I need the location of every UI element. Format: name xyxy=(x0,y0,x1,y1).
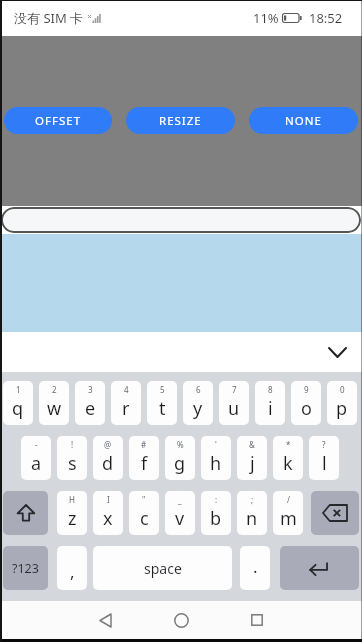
staticText: e xyxy=(85,396,96,421)
button[interactable]: NONE xyxy=(249,107,358,134)
button[interactable]: * xyxy=(273,436,303,480)
staticText: 8 xyxy=(268,384,273,395)
staticText: ' xyxy=(215,439,217,450)
staticText: * xyxy=(286,439,291,450)
button[interactable]: OFFSET xyxy=(4,107,112,134)
staticText: , xyxy=(70,560,75,583)
button[interactable]: . xyxy=(240,546,270,590)
staticText: 6 xyxy=(196,384,201,395)
staticText: k xyxy=(283,451,293,476)
staticText: 没有 SIM 卡 xyxy=(14,9,84,27)
button[interactable]: ! xyxy=(57,436,87,480)
staticText: g xyxy=(174,451,186,476)
button[interactable] xyxy=(320,337,354,367)
button[interactable] xyxy=(311,491,359,535)
button[interactable]: & xyxy=(237,436,267,480)
staticText: . xyxy=(253,555,258,578)
button[interactable] xyxy=(3,491,48,535)
staticText: 4 xyxy=(124,384,129,395)
staticText: c xyxy=(140,506,149,531)
staticText: 18:52 xyxy=(309,9,343,27)
staticText: space xyxy=(144,559,182,578)
staticText: / xyxy=(287,494,290,505)
staticText: RESIZE xyxy=(159,113,202,129)
staticText: o xyxy=(301,396,312,421)
staticText: x xyxy=(103,506,113,531)
staticText: % xyxy=(177,439,184,450)
staticText: 0 xyxy=(340,384,345,395)
staticText: l xyxy=(322,451,327,476)
button[interactable]: : xyxy=(201,491,231,535)
staticText: f xyxy=(141,451,148,476)
staticText: I xyxy=(107,494,110,505)
button[interactable]: ' xyxy=(201,436,231,480)
staticText: ! xyxy=(71,439,74,450)
staticText: 11% xyxy=(253,9,279,27)
staticText: y xyxy=(193,396,203,421)
staticText: n xyxy=(246,506,258,531)
staticText: : xyxy=(215,494,218,505)
button[interactable]: H xyxy=(57,491,87,535)
staticText: & xyxy=(249,439,255,450)
staticText: @ xyxy=(104,439,112,450)
button[interactable]: 5 xyxy=(147,381,177,425)
button[interactable] xyxy=(280,546,359,590)
staticText: ? xyxy=(322,439,326,450)
staticText: m xyxy=(280,506,297,531)
button[interactable]: 2 xyxy=(39,381,69,425)
staticText: 9 xyxy=(304,384,309,395)
staticText: p xyxy=(336,396,348,421)
button[interactable]: ; xyxy=(237,491,267,535)
button[interactable]: % xyxy=(165,436,195,480)
staticText: 7 xyxy=(232,384,237,395)
staticText: 2 xyxy=(52,384,57,395)
staticText: j xyxy=(250,451,255,476)
staticText: H xyxy=(69,494,75,505)
staticText: # xyxy=(141,439,147,450)
staticText: d xyxy=(102,451,114,476)
button[interactable]: ? xyxy=(309,436,339,480)
staticText: 5 xyxy=(160,384,165,395)
button[interactable] xyxy=(227,601,287,639)
button[interactable] xyxy=(1,207,361,233)
button[interactable]: 8 xyxy=(255,381,285,425)
button[interactable]: # xyxy=(129,436,159,480)
button[interactable]: 7 xyxy=(219,381,249,425)
button[interactable]: @ xyxy=(93,436,123,480)
button[interactable]: RESIZE xyxy=(126,107,235,134)
staticText: t xyxy=(159,396,166,421)
button[interactable]: 9 xyxy=(291,381,321,425)
staticText: NONE xyxy=(285,113,322,129)
button[interactable]: 4 xyxy=(111,381,141,425)
button[interactable] xyxy=(75,601,135,639)
staticText: 1 xyxy=(16,384,21,395)
button[interactable]: space xyxy=(93,546,232,590)
button[interactable]: 1 xyxy=(3,381,33,425)
staticText: OFFSET xyxy=(35,113,82,129)
staticText: v xyxy=(175,506,185,531)
staticText: - xyxy=(35,439,38,450)
button[interactable]: ?123 xyxy=(3,546,48,590)
staticText: ; xyxy=(251,494,254,505)
staticText: q xyxy=(12,396,24,421)
button[interactable]: - xyxy=(21,436,51,480)
staticText: h xyxy=(210,451,222,476)
button[interactable] xyxy=(151,601,211,639)
button[interactable]: 3 xyxy=(75,381,105,425)
staticText: u xyxy=(228,396,240,421)
button[interactable]: 0 xyxy=(327,381,357,425)
staticText: w xyxy=(47,396,62,421)
staticText: r xyxy=(122,396,130,421)
staticText: b xyxy=(210,506,222,531)
staticText: ?123 xyxy=(12,560,39,577)
staticText: " xyxy=(142,494,146,505)
button[interactable]: , xyxy=(57,546,87,590)
button[interactable]: " xyxy=(129,491,159,535)
button[interactable]: I xyxy=(93,491,123,535)
button[interactable]: 6 xyxy=(183,381,213,425)
staticText: a xyxy=(31,451,42,476)
button[interactable]: _ xyxy=(165,491,195,535)
button[interactable]: / xyxy=(273,491,303,535)
staticText: i xyxy=(268,396,273,421)
staticText: z xyxy=(68,506,77,531)
